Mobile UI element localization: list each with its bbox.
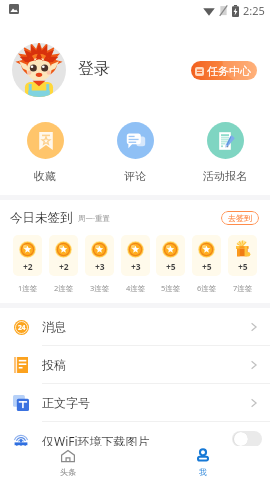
- button[interactable]: Avatar: [12, 43, 66, 97]
- staticText: 5连签: [161, 283, 181, 293]
- button[interactable]: 去签到: [221, 211, 259, 225]
- staticText: +5: [166, 261, 176, 273]
- button[interactable]: +2: [13, 235, 42, 276]
- staticText: 我: [199, 467, 207, 477]
- staticText: 周一·重置: [78, 213, 111, 223]
- staticText: 4连签: [126, 283, 146, 293]
- staticText: 2:25: [243, 3, 265, 18]
- staticText: 3连签: [90, 283, 110, 293]
- button[interactable]: WiFi only toggle: [232, 431, 262, 447]
- staticText: +2: [59, 261, 69, 273]
- button[interactable]: 头条: [0, 446, 135, 477]
- staticText: 6连签: [197, 283, 217, 293]
- button[interactable]: +5: [228, 235, 257, 276]
- staticText: 2连签: [54, 283, 74, 293]
- staticText: 1连签: [18, 283, 38, 293]
- staticText: 去签到: [228, 213, 252, 223]
- staticText: 登录: [78, 59, 110, 79]
- staticText: 消息: [42, 319, 66, 334]
- staticText: 任务中心: [207, 64, 251, 78]
- staticText: +5: [238, 261, 248, 273]
- staticText: 收藏: [34, 169, 56, 183]
- button[interactable]: 仅WiFi环境下载图片: [0, 422, 270, 459]
- button[interactable]: 正文字号: [0, 384, 270, 421]
- button[interactable]: +2: [49, 235, 78, 276]
- button[interactable]: 投稿: [0, 346, 270, 383]
- staticText: 活动报名: [203, 169, 247, 183]
- button[interactable]: 我: [135, 446, 270, 477]
- button[interactable]: +3: [85, 235, 114, 276]
- staticText: 24: [18, 323, 26, 332]
- button[interactable]: 24: [0, 308, 270, 345]
- staticText: 评论: [124, 169, 146, 183]
- staticText: 头条: [60, 467, 76, 477]
- staticText: +2: [23, 261, 33, 273]
- button[interactable]: +3: [121, 235, 150, 276]
- button[interactable]: +5: [192, 235, 221, 276]
- button[interactable]: 收藏: [0, 108, 90, 183]
- staticText: 仅WiFi环境下载图片: [42, 433, 150, 449]
- staticText: 7连签: [233, 283, 253, 293]
- button[interactable]: 任务中心: [191, 61, 257, 80]
- staticText: +3: [95, 261, 105, 273]
- staticText: +5: [202, 261, 212, 273]
- button[interactable]: +5: [156, 235, 185, 276]
- staticText: 投稿: [42, 357, 66, 372]
- staticText: +3: [131, 261, 141, 273]
- staticText: 今日未签到: [10, 210, 73, 226]
- button[interactable]: 活动报名: [180, 108, 270, 183]
- staticText: 正文字号: [42, 395, 90, 410]
- button[interactable]: 评论: [90, 108, 180, 183]
